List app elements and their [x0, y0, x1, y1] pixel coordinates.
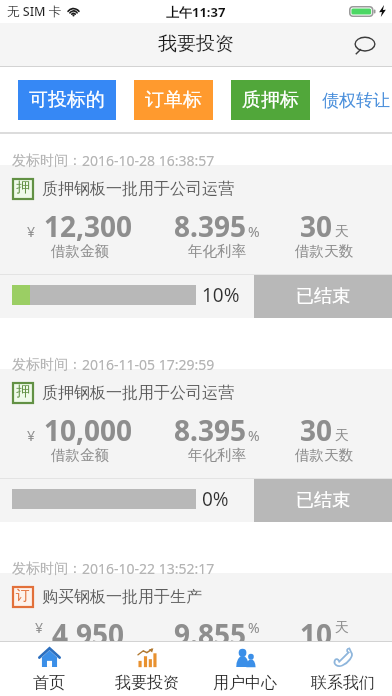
- button[interactable]: 已结束: [254, 479, 392, 522]
- staticText: 8.395: [174, 207, 246, 245]
- staticText: 质押钢板一批用于公司运营: [42, 179, 234, 199]
- staticText: 发标时间：: [12, 356, 82, 374]
- staticText: 0%: [202, 486, 229, 512]
- button[interactable]: 联系我们: [294, 641, 392, 696]
- staticText: 发标时间：: [12, 152, 82, 170]
- staticText: 年化利率: [188, 242, 246, 260]
- staticText: 订: [16, 587, 30, 605]
- staticText: 8.395: [174, 411, 246, 449]
- staticText: 我要投资: [158, 32, 234, 56]
- staticText: ¥: [27, 222, 36, 241]
- staticText: 10%: [202, 282, 240, 308]
- button[interactable]: Messages: [348, 28, 382, 62]
- staticText: 质押钢板一批用于公司运营: [42, 383, 234, 403]
- button[interactable]: 订单标: [134, 80, 213, 120]
- staticText: 2016-10-28 16:38:57: [82, 151, 215, 170]
- staticText: 首页: [33, 673, 65, 693]
- staticText: 发标时间：: [12, 560, 82, 578]
- staticText: 已结束: [296, 489, 350, 512]
- staticText: 无 SIM 卡: [7, 3, 62, 20]
- button[interactable]: 发标时间：: [0, 338, 392, 522]
- staticText: 天: [335, 427, 349, 445]
- staticText: 联系我们: [311, 673, 375, 693]
- staticText: %: [248, 222, 260, 241]
- staticText: 质押标: [242, 88, 299, 112]
- staticText: 订单标: [145, 88, 202, 112]
- staticText: ¥: [27, 426, 36, 445]
- staticText: 10,000: [44, 411, 133, 449]
- staticText: 借款天数: [295, 446, 353, 464]
- staticText: 30: [300, 411, 333, 449]
- staticText: 押: [16, 383, 30, 401]
- staticText: 可投标的: [29, 88, 105, 112]
- staticText: 天: [335, 223, 349, 241]
- staticText: 2016-11-05 17:29:59: [82, 355, 215, 374]
- staticText: 4,950: [52, 615, 125, 641]
- staticText: 押: [16, 179, 30, 197]
- button[interactable]: 发标时间：: [0, 134, 392, 318]
- staticText: 上午11:37: [166, 3, 226, 21]
- button[interactable]: 用户中心: [196, 641, 294, 696]
- staticText: 10: [300, 615, 333, 641]
- button[interactable]: 可投标的: [18, 80, 116, 120]
- staticText: 用户中心: [213, 673, 277, 693]
- staticText: 购买钢板一批用于生产: [42, 587, 202, 607]
- button[interactable]: 已结束: [254, 275, 392, 318]
- staticText: ¥: [35, 618, 44, 637]
- staticText: 天: [335, 619, 349, 637]
- staticText: 12,300: [44, 207, 133, 245]
- staticText: 30: [300, 207, 333, 245]
- button[interactable]: 我要投资: [98, 641, 196, 696]
- button[interactable]: 发标时间：: [0, 542, 392, 641]
- staticText: 借款金额: [51, 242, 109, 260]
- staticText: %: [248, 426, 260, 445]
- button[interactable]: 首页: [0, 641, 98, 696]
- staticText: 借款金额: [51, 446, 109, 464]
- staticText: 我要投资: [115, 673, 179, 693]
- staticText: 已结束: [296, 285, 350, 308]
- staticText: 借款天数: [295, 242, 353, 260]
- staticText: 债权转让: [322, 90, 390, 111]
- staticText: %: [248, 618, 260, 637]
- staticText: 年化利率: [188, 446, 246, 464]
- staticText: 2016-10-22 13:52:17: [82, 559, 215, 578]
- staticText: 9.855: [174, 615, 246, 641]
- button[interactable]: 质押标: [231, 80, 310, 120]
- button[interactable]: 债权转让: [322, 80, 390, 120]
